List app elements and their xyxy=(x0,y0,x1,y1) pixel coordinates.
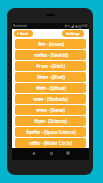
staticText: शासन - (Shahada) xyxy=(33,96,68,102)
button[interactable]: वार्तिक - (Water Circle) xyxy=(15,138,86,148)
staticText: विज्ञान - (Science) xyxy=(34,118,67,124)
button[interactable]: Settings xyxy=(62,30,84,37)
button[interactable]: लिखत - (Jihad) xyxy=(15,72,86,82)
button[interactable]: शासन - (Shahada) xyxy=(15,94,86,104)
button[interactable]: समाज - (Dawa) xyxy=(15,105,86,115)
button[interactable]: Prure - (Shirk) xyxy=(15,61,86,71)
button[interactable]: विज्ञान - (Science) xyxy=(15,116,86,126)
button[interactable]: Recents xyxy=(65,150,71,156)
button[interactable]: वैज्ञानिक - (Space Science) xyxy=(15,127,86,137)
button[interactable]: मैनर - (Imam) xyxy=(15,39,86,49)
staticText: नागरिक - (Tawhid) xyxy=(34,52,68,58)
staticText: निर्णय - (Ijtihad) xyxy=(36,85,66,91)
staticText: Prure - (Shirk) xyxy=(36,63,65,69)
staticText: मैनर - (Imam) xyxy=(38,41,64,47)
staticText: Notebook xyxy=(13,24,27,28)
staticText: Settings xyxy=(66,31,80,36)
staticText: वैज्ञानिक - (Space Science) xyxy=(26,129,76,135)
button[interactable]: Back xyxy=(14,30,33,37)
button[interactable]: निर्णय - (Ijtihad) xyxy=(15,83,86,93)
button[interactable]: Back xyxy=(30,150,36,156)
staticText: लिखत - (Jihad) xyxy=(37,74,65,80)
staticText: Back xyxy=(20,31,28,36)
staticText: समाज - (Dawa) xyxy=(36,107,65,113)
staticText: 9:45 xyxy=(82,24,88,28)
staticText: वार्तिक - (Water Circle) xyxy=(29,140,72,146)
button[interactable]: Home xyxy=(48,150,54,156)
button[interactable]: नागरिक - (Tawhid) xyxy=(15,50,86,60)
